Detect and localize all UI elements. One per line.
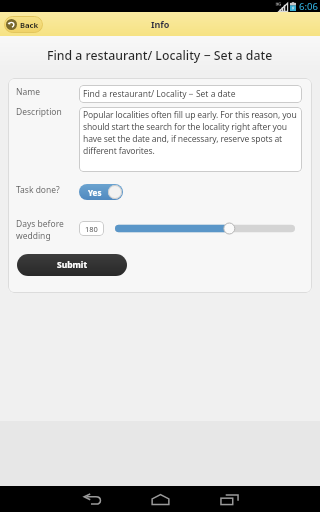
button[interactable]: Home <box>138 486 182 512</box>
staticText: Days before wedding <box>16 218 64 242</box>
button[interactable]: Find a restaurant/ Locality − Set a date <box>79 85 302 103</box>
button[interactable]: Submit <box>17 254 127 276</box>
button[interactable]: Popular localities often fill up early. … <box>79 107 302 172</box>
button[interactable]: Back <box>4 16 43 33</box>
button[interactable]: Yes <box>79 184 123 200</box>
staticText: Info <box>151 18 170 30</box>
button[interactable]: 180 <box>79 221 104 236</box>
staticText: Find a restaurant/ Locality − Set a date <box>83 88 236 100</box>
staticText: 6:06 <box>299 0 318 12</box>
staticText: 180 <box>85 224 98 234</box>
button[interactable]: Recent apps <box>207 486 251 512</box>
staticText: Task done? <box>16 184 60 196</box>
button[interactable]: Days slider <box>115 221 295 236</box>
staticText: Find a restaurant/ Locality − Set a date <box>47 47 273 64</box>
staticText: Back <box>20 20 39 30</box>
staticText: Yes <box>88 187 102 198</box>
staticText: Description <box>16 106 62 118</box>
staticText: Popular localities often fill up early. … <box>83 109 302 157</box>
staticText: Submit <box>57 259 88 271</box>
staticText: Name <box>16 86 40 98</box>
button[interactable]: Back <box>70 486 114 512</box>
